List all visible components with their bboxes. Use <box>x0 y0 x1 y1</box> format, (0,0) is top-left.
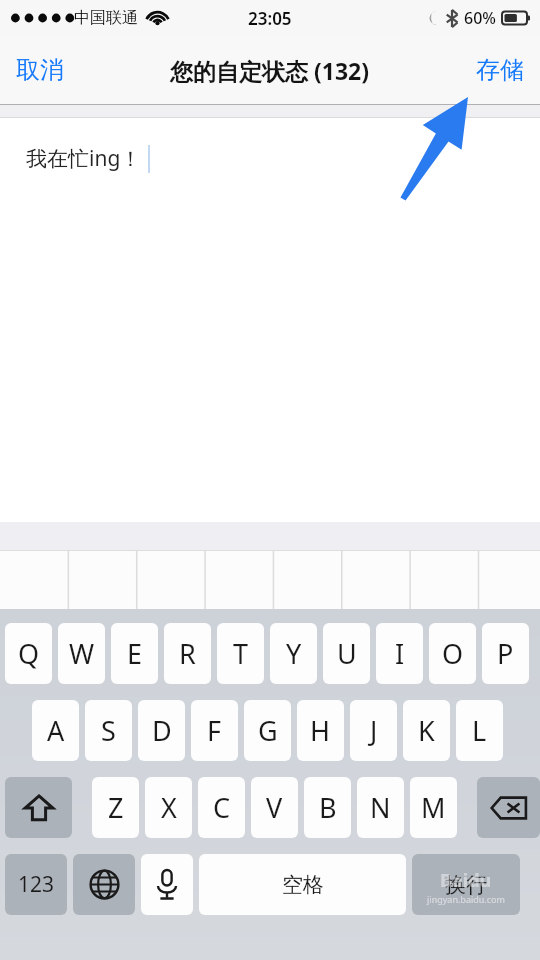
staticText: C <box>213 789 231 826</box>
staticText: D <box>152 712 172 749</box>
staticText: 取消 <box>16 55 64 85</box>
button[interactable]: C <box>198 777 245 838</box>
staticText: 中国联通 <box>74 8 138 28</box>
button[interactable]: B <box>304 777 351 838</box>
staticText: 23:05 <box>248 7 292 30</box>
button[interactable]: Delete <box>477 777 540 838</box>
staticText: 空格 <box>282 872 324 898</box>
staticText: P <box>497 635 514 672</box>
staticText: jingyan.baidu.com <box>427 893 505 905</box>
button[interactable]: T <box>217 623 264 684</box>
staticText: M <box>421 789 446 826</box>
staticText: Q <box>18 635 40 672</box>
button[interactable]: S <box>85 700 132 761</box>
staticText: 存储 <box>476 55 524 85</box>
staticText: I <box>395 635 405 672</box>
staticText: V <box>266 789 283 826</box>
staticText: 换行 <box>445 872 487 898</box>
staticText: Z <box>108 789 124 826</box>
button[interactable]: K <box>403 700 450 761</box>
button[interactable]: Shift <box>5 777 72 838</box>
staticText: N <box>370 789 391 826</box>
button[interactable]: M <box>410 777 457 838</box>
button[interactable]: Q <box>5 623 52 684</box>
staticText: 60% <box>464 7 496 29</box>
button[interactable]: F <box>191 700 238 761</box>
button[interactable]: D <box>138 700 185 761</box>
staticText: K <box>418 712 435 749</box>
button[interactable]: A <box>32 700 79 761</box>
staticText: O <box>442 635 464 672</box>
button[interactable]: Next keyboard <box>73 854 135 915</box>
button[interactable]: 123 <box>5 854 67 915</box>
staticText: A <box>47 712 65 749</box>
button[interactable]: 取消 <box>0 36 80 104</box>
staticText: Y <box>286 635 302 672</box>
button[interactable]: E <box>111 623 158 684</box>
button[interactable]: U <box>323 623 370 684</box>
button[interactable]: N <box>357 777 404 838</box>
button[interactable]: R <box>164 623 211 684</box>
button[interactable]: Dictate <box>141 854 193 915</box>
staticText: 我在忙ing！ <box>26 144 142 173</box>
staticText: 您的自定状态 (132) <box>170 55 370 86</box>
button[interactable]: P <box>482 623 529 684</box>
button[interactable]: H <box>297 700 344 761</box>
staticText: E <box>127 635 143 672</box>
button[interactable]: Y <box>270 623 317 684</box>
staticText: U <box>337 635 357 672</box>
button[interactable]: 空格 <box>199 854 406 915</box>
staticText: W <box>69 635 95 672</box>
button[interactable]: 存储 <box>460 36 540 104</box>
button[interactable]: I <box>376 623 423 684</box>
staticText: J <box>370 712 378 749</box>
staticText: L <box>472 712 487 749</box>
button[interactable]: O <box>429 623 476 684</box>
button[interactable]: G <box>244 700 291 761</box>
staticText: R <box>179 635 196 672</box>
button[interactable]: W <box>58 623 105 684</box>
staticText: S <box>101 712 116 749</box>
button[interactable]: L <box>456 700 503 761</box>
button[interactable]: J <box>350 700 397 761</box>
staticText: B <box>319 789 337 826</box>
staticText: X <box>161 789 177 826</box>
staticText: G <box>258 712 278 749</box>
button[interactable]: V <box>251 777 298 838</box>
button[interactable]: 换行 <box>412 854 520 915</box>
button[interactable]: Z <box>92 777 139 838</box>
staticText: T <box>233 635 249 672</box>
staticText: Baidu <box>440 868 492 893</box>
staticText: H <box>310 712 331 749</box>
button[interactable]: X <box>145 777 192 838</box>
staticText: F <box>207 712 222 749</box>
staticText: 123 <box>18 870 55 899</box>
